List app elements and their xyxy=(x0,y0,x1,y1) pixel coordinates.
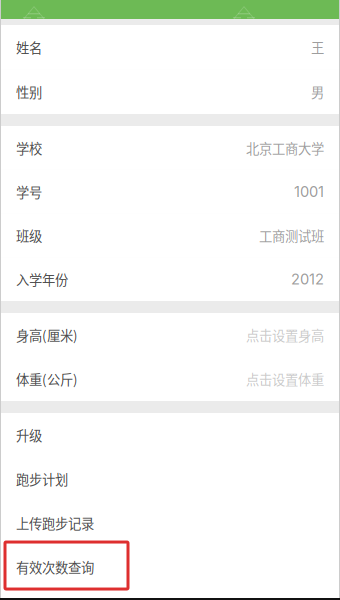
button[interactable]: 性别 xyxy=(0,69,340,114)
staticText: 上传跑步记录 xyxy=(16,513,94,533)
staticText: 北京工商大学 xyxy=(246,138,324,157)
button[interactable]: 入学年份 xyxy=(0,257,340,301)
button[interactable]: 跑步计划 xyxy=(0,457,340,501)
button[interactable]: 上传跑步记录 xyxy=(0,501,340,545)
staticText: 跑步计划 xyxy=(16,469,68,489)
staticText: 男 xyxy=(311,82,324,101)
staticText: 升级 xyxy=(16,425,42,445)
staticText: 1001 xyxy=(294,183,324,200)
staticText: 班级 xyxy=(16,226,42,245)
staticText: 王 xyxy=(311,38,324,57)
button[interactable]: 身高(厘米) xyxy=(0,313,340,357)
button[interactable]: 班级 xyxy=(0,213,340,257)
staticText: 入学年份 xyxy=(16,269,68,289)
button[interactable]: 学号 xyxy=(0,170,340,214)
button[interactable]: 升级 xyxy=(0,413,340,457)
staticText: 工商测试班 xyxy=(259,226,324,245)
staticText: 点击设置身高 xyxy=(246,325,324,345)
button[interactable]: 有效次数查询 xyxy=(0,545,340,589)
staticText: 点击设置体重 xyxy=(246,369,324,389)
staticText: 姓名 xyxy=(16,38,42,57)
staticText: 身高(厘米) xyxy=(16,325,78,345)
button[interactable]: 姓名 xyxy=(0,25,340,69)
staticText: 学号 xyxy=(16,182,42,201)
staticText: 2012 xyxy=(291,270,324,288)
button[interactable]: 学校 xyxy=(0,126,340,170)
staticText: 有效次数查询 xyxy=(16,557,94,577)
staticText: 学校 xyxy=(16,138,42,157)
staticText: 性别 xyxy=(16,82,42,101)
staticText: 体重(公斤) xyxy=(16,369,78,389)
button[interactable]: 体重(公斤) xyxy=(0,357,340,401)
